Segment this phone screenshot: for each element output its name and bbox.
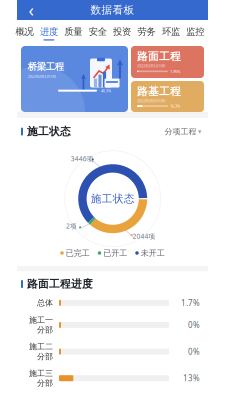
button[interactable]: 桥梁工程: [21, 46, 128, 112]
button[interactable]: 分项工程: [164, 127, 201, 136]
staticText: 概况: [15, 26, 33, 37]
staticText: 0%: [188, 346, 200, 357]
staticText: 劳务: [137, 26, 155, 37]
staticText: 投资: [113, 26, 131, 37]
staticText: 2022/02/03-01/30: [137, 98, 165, 103]
staticText: 分部: [37, 325, 53, 335]
staticText: 路面工程: [137, 50, 181, 63]
button[interactable]: 安全: [85, 23, 110, 46]
button[interactable]: 路面工程: [131, 46, 204, 78]
button[interactable]: 劳务: [134, 23, 159, 46]
staticText: 数据看板: [90, 3, 134, 16]
staticText: 施工状态: [91, 192, 135, 205]
button[interactable]: 监控: [183, 23, 207, 46]
staticText: 质量: [64, 26, 82, 37]
staticText: 环监: [162, 26, 180, 37]
staticText: 路面工程进度: [27, 277, 93, 291]
button[interactable]: 进度: [37, 23, 61, 46]
staticText: 总体: [37, 298, 53, 308]
staticText: 13%: [183, 373, 200, 383]
staticText: 16.3%: [170, 103, 180, 109]
staticText: 0%: [188, 320, 200, 330]
staticText: 2项: [66, 222, 77, 230]
staticText: 已完工: [66, 248, 90, 258]
staticText: 1.7%: [181, 298, 200, 308]
staticText: 分部: [37, 378, 53, 388]
button[interactable]: 投资: [110, 23, 134, 46]
staticText: 桥梁工程: [28, 61, 64, 72]
staticText: 施工状态: [27, 125, 71, 138]
staticText: 2022/02/03-01/30: [28, 73, 56, 79]
staticText: ‹: [28, 0, 33, 21]
staticText: 监控: [186, 26, 204, 37]
button[interactable]: Back: [22, 0, 40, 20]
button[interactable]: 质量: [61, 23, 85, 46]
staticText: 1.95%: [170, 69, 180, 74]
staticText: 安全: [89, 26, 107, 37]
staticText: 分部: [37, 352, 53, 361]
staticText: 3446项: [71, 154, 94, 163]
staticText: 施工一: [29, 315, 53, 325]
staticText: 已开工: [103, 248, 127, 258]
staticText: 施工三: [29, 368, 53, 378]
button[interactable]: 概况: [12, 23, 37, 46]
staticText: 施工二: [29, 342, 53, 352]
staticText: 进度: [40, 26, 58, 37]
staticText: ▾: [198, 128, 201, 135]
staticText: 2044项: [132, 232, 155, 241]
staticText: 路基工程: [137, 85, 181, 98]
staticText: 分项工程: [164, 127, 196, 136]
button[interactable]: 路基工程: [131, 81, 204, 112]
staticText: 46.3%: [101, 88, 111, 93]
staticText: 未开工: [141, 248, 165, 258]
staticText: 2022/02/03-01/30: [137, 63, 165, 68]
button[interactable]: 环监: [159, 23, 183, 46]
